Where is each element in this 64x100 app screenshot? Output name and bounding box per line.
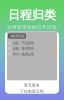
button[interactable]: 会议 · 产品评审 (7, 40, 57, 46)
staticText: 学习 · 技术分享 (13, 52, 34, 56)
staticText: 出差 · 客户拜访 (13, 46, 34, 51)
button[interactable]: 学习 · 技术分享 (7, 51, 57, 57)
staticText: 暂无更多 (24, 83, 40, 87)
staticText: 分类管理你的日常日程 (7, 24, 57, 30)
staticText: 会议 · 产品评审 (13, 41, 34, 45)
staticText: 下拉刷新日程 (20, 89, 44, 94)
staticText: 日程归类 (8, 7, 56, 22)
staticText: 待处理日程 (9, 34, 24, 38)
button[interactable]: 出差 · 客户拜访 (7, 46, 57, 51)
